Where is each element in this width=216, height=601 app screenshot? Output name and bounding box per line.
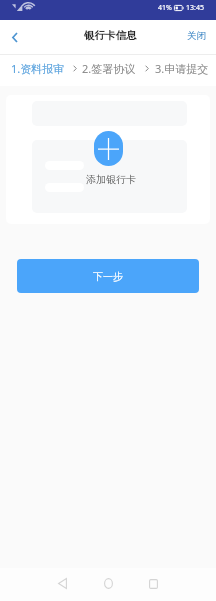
staticText: 添加银行卡: [86, 173, 136, 186]
button[interactable]: Recents: [138, 568, 168, 601]
staticText: 关闭: [187, 30, 206, 42]
staticText: 银行卡信息: [84, 29, 137, 42]
button[interactable]: Add bank card: [94, 131, 123, 166]
staticText: 下一步: [93, 270, 123, 283]
button[interactable]: Back: [0, 20, 30, 54]
staticText: 13:45: [186, 3, 204, 13]
button[interactable]: Add bank card: [6, 95, 210, 224]
button[interactable]: 关闭: [177, 20, 216, 52]
staticText: 3.申请提交: [155, 61, 209, 76]
button[interactable]: 下一步: [17, 259, 199, 293]
staticText: 41%: [158, 3, 172, 13]
button[interactable]: Home: [93, 568, 123, 601]
staticText: 2.签署协议: [82, 61, 136, 76]
staticText: 1.资料报审: [11, 61, 65, 76]
button[interactable]: Back: [47, 568, 77, 601]
